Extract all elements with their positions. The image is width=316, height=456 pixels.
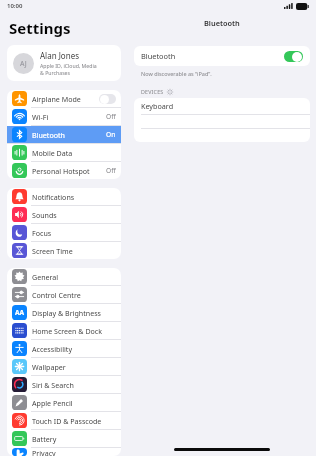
staticText: Personal Hotspot [32, 166, 106, 176]
staticText: Screen Time [32, 246, 116, 256]
staticText: Accessibility [32, 344, 116, 354]
button[interactable]: Apple Pencil [7, 394, 121, 411]
staticText: Mobile Data [32, 148, 116, 158]
staticText: Focus [32, 228, 116, 238]
button[interactable]: AJ [7, 45, 121, 81]
button[interactable]: Notifications [7, 188, 121, 205]
button[interactable]: Accessibility [7, 340, 121, 357]
button[interactable]: Wallpaper [7, 358, 121, 375]
staticText: Control Centre [32, 290, 116, 300]
staticText: Bluetooth [141, 51, 284, 61]
button[interactable]: Home Screen & Dock [7, 322, 121, 339]
button[interactable]: Screen Time [7, 242, 121, 259]
button[interactable]: Privacy [7, 448, 121, 456]
staticText: Off [106, 112, 116, 121]
staticText: Privacy [32, 448, 116, 456]
button[interactable]: Airplane Mode [7, 90, 121, 107]
staticText: Home Screen & Dock [32, 326, 116, 336]
staticText: DEVICES [141, 88, 164, 95]
button[interactable]: Siri & Search [7, 376, 121, 393]
staticText: Siri & Search [32, 380, 116, 390]
staticText: Off [106, 166, 116, 175]
staticText: Touch ID & Passcode [32, 416, 116, 426]
staticText: Bluetooth [32, 130, 106, 140]
button[interactable]: Mobile Data [7, 144, 121, 161]
staticText: Bluetooth [204, 18, 240, 28]
staticText: Apple ID, iCloud, Media [40, 62, 97, 69]
button[interactable]: Bluetooth [7, 126, 121, 143]
button[interactable]: General [7, 268, 121, 285]
staticText: 10:00 [7, 2, 23, 10]
button[interactable]: Wi-Fi [7, 108, 121, 125]
button[interactable]: Battery [7, 430, 121, 447]
button[interactable]: Sounds [7, 206, 121, 223]
staticText: Wallpaper [32, 362, 116, 372]
staticText: Notifications [32, 192, 116, 202]
button[interactable]: AA [7, 304, 121, 321]
button[interactable]: Keyboard [134, 98, 310, 114]
staticText: Sounds [32, 210, 116, 220]
button[interactable]: Control Centre [7, 286, 121, 303]
staticText: Display & Brightness [32, 308, 116, 318]
staticText: AJ [20, 59, 27, 68]
staticText: Battery [32, 434, 116, 444]
button[interactable]: Personal Hotspot [7, 162, 121, 179]
staticText: Settings [9, 18, 71, 38]
button[interactable]: Bluetooth [134, 46, 310, 66]
staticText: Wi-Fi [32, 112, 106, 122]
staticText: Alan Jones [40, 50, 79, 61]
staticText: General [32, 272, 116, 282]
staticText: Airplane Mode [32, 94, 99, 104]
button[interactable]: Focus [7, 224, 121, 241]
staticText: Now discoverable as “iPad”. [141, 70, 212, 77]
staticText: AA [15, 308, 25, 317]
staticText: & Purchases [40, 69, 71, 76]
staticText: Keyboard [141, 101, 174, 111]
button[interactable]: Touch ID & Passcode [7, 412, 121, 429]
staticText: On [106, 130, 116, 139]
staticText: Apple Pencil [32, 398, 116, 408]
